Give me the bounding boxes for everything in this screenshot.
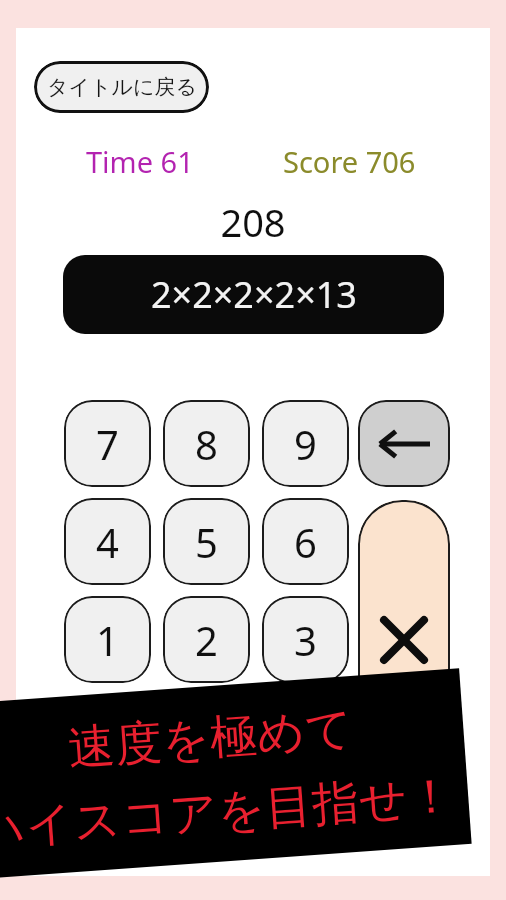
button[interactable]: 9 (262, 400, 349, 487)
button[interactable]: 4 (64, 498, 151, 585)
staticText: ハイスコアを目指せ！ (0, 766, 456, 859)
button[interactable]: 6 (262, 498, 349, 585)
staticText: 3 (294, 613, 317, 667)
staticText: 1 (96, 613, 119, 667)
button[interactable]: 7 (64, 400, 151, 487)
staticText: Time 61 (86, 142, 194, 181)
staticText: 7 (96, 417, 119, 471)
button[interactable]: 8 (163, 400, 250, 487)
staticText: 6 (294, 515, 317, 569)
staticText: 208 (220, 196, 286, 248)
button[interactable]: タイトルに戻る (34, 61, 209, 113)
staticText: 2 (195, 613, 218, 667)
staticText: 速度を極めて (66, 699, 355, 778)
staticText: 9 (294, 417, 317, 471)
button[interactable]: Backspace (358, 400, 450, 487)
button[interactable]: 3 (262, 596, 349, 683)
staticText: Score 706 (283, 142, 416, 181)
button[interactable]: Multiply (358, 500, 450, 710)
button[interactable]: 5 (163, 498, 250, 585)
button[interactable]: 2 (163, 596, 250, 683)
button[interactable]: 速度を極めて (0, 668, 472, 880)
button[interactable]: Time 61 (86, 142, 194, 181)
staticText: 5 (195, 515, 218, 569)
button[interactable]: 2×2×2×2×13 (63, 255, 444, 334)
staticText: タイトルに戻る (47, 74, 197, 100)
button[interactable]: Score 706 (283, 142, 416, 181)
staticText: 2×2×2×2×13 (151, 270, 357, 319)
button[interactable]: 1 (64, 596, 151, 683)
staticText: 4 (96, 515, 119, 569)
staticText: 8 (195, 417, 218, 471)
